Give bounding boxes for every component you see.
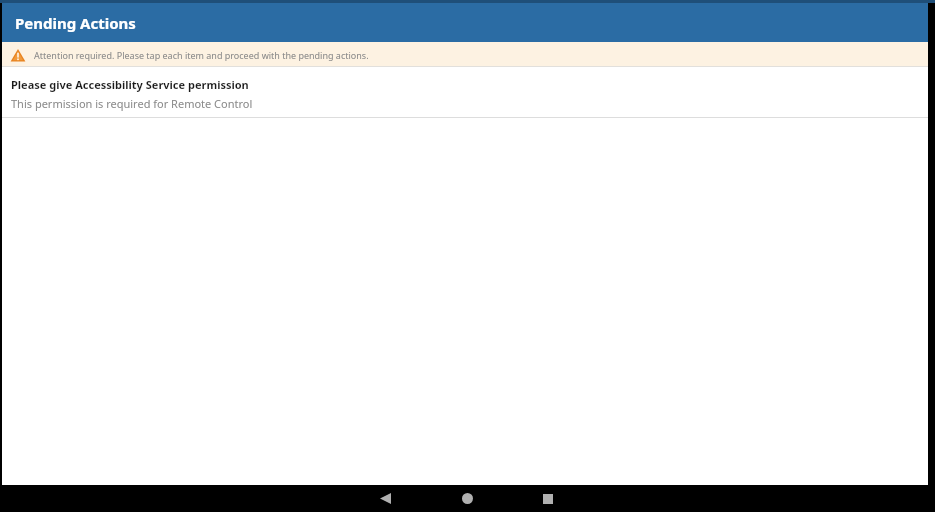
staticText: This permission is required for Remote C… [11, 96, 253, 111]
button[interactable]: Recent apps [532, 485, 564, 512]
button[interactable]: Back [369, 485, 401, 512]
button[interactable]: Warning [2, 42, 928, 67]
staticText: Pending Actions [15, 13, 136, 33]
staticText: Please give Accessibility Service permis… [11, 77, 249, 92]
button[interactable]: Please give Accessibility Service permis… [2, 67, 928, 117]
other: Warning [10, 47, 26, 63]
staticText: Attention required. Please tap each item… [34, 49, 369, 61]
button[interactable]: Home [451, 485, 483, 512]
